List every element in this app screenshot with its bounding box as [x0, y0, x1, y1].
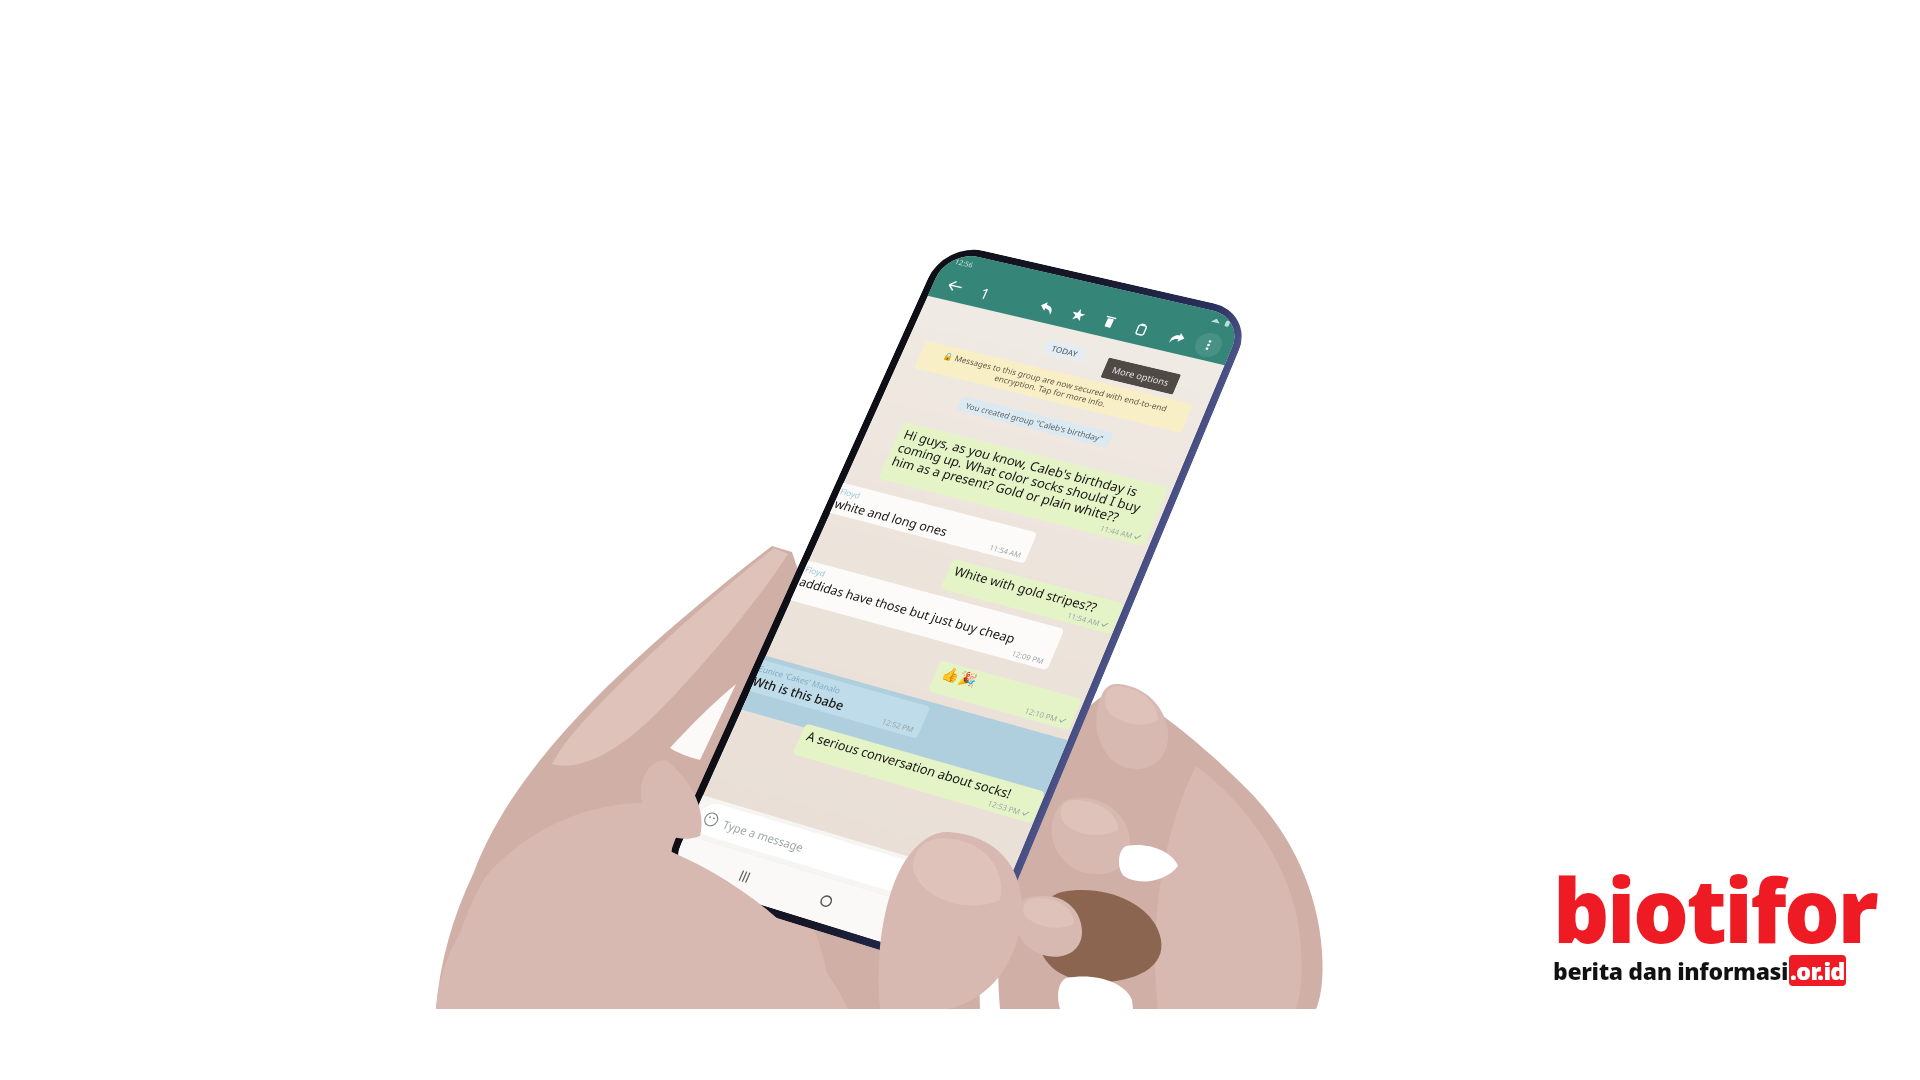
staticText: A serious conversation about socks! [804, 728, 1015, 802]
staticText: Hi guys, as you know, Caleb's birthday i… [889, 426, 1161, 533]
button[interactable]: Recent apps [727, 861, 761, 891]
button[interactable]: Floyd [830, 483, 1038, 564]
button[interactable]: Delete [1093, 309, 1126, 335]
staticText: 1 [977, 283, 994, 304]
staticText: biotifor [1553, 849, 1877, 969]
button[interactable]: Hi guys, as you know, Caleb's birthday i… [878, 422, 1169, 546]
button[interactable]: 🔒 Messages to this group are now secured… [914, 340, 1193, 433]
staticText: Floyd [804, 563, 828, 579]
staticText: addidas have those but just buy cheap [797, 573, 1018, 647]
button[interactable]: More options [1191, 330, 1226, 360]
staticText: 12:10 PM [1023, 705, 1059, 724]
staticText: You created group "Caleb's birthday" [964, 400, 1106, 444]
button[interactable]: White with gold stripes?? [940, 559, 1124, 634]
button[interactable]: 👍🎉 [927, 660, 1082, 730]
staticText: 12:09 PM [1010, 648, 1046, 666]
button[interactable]: Reply [1031, 294, 1062, 321]
staticText: TODAY [1050, 343, 1080, 359]
staticText: 🔒 Messages to this group are now secured… [923, 346, 1184, 427]
button[interactable]: Copy [1125, 316, 1158, 343]
staticText: Eunice 'Cakes' Manalo [758, 663, 843, 696]
button[interactable]: Forward [1161, 324, 1193, 351]
staticText: Type a message [720, 816, 807, 855]
staticText: White with gold stripes?? [952, 563, 1100, 616]
button[interactable]: A serious conversation about socks! [792, 723, 1045, 824]
staticText: 11:44 AM [1099, 523, 1134, 540]
button[interactable]: Floyd [790, 560, 1065, 670]
button[interactable]: Home [809, 886, 843, 917]
staticText: berita dan informasi [1553, 955, 1789, 986]
staticText: 11:54 AM [1066, 610, 1102, 628]
staticText: 12:56 [953, 256, 975, 269]
staticText: More options [1110, 363, 1171, 389]
staticText: .or.id [1790, 955, 1845, 986]
staticText: 11:54 AM [988, 542, 1023, 559]
button[interactable]: Type a message [692, 800, 1001, 921]
staticText: Floyd [839, 485, 863, 501]
staticText: 12:52 PM [880, 716, 916, 734]
button[interactable]: Back [940, 273, 971, 299]
button[interactable]: You created group "Caleb's birthday" [956, 396, 1114, 448]
staticText: Wth is this babe [751, 673, 848, 714]
staticText: 👍🎉 [939, 664, 980, 690]
staticText: 12:53 PM [986, 797, 1023, 817]
button[interactable]: Star [1062, 301, 1094, 328]
button[interactable]: Eunice 'Cakes' Manalo [750, 660, 931, 739]
staticText: white and long ones [832, 495, 950, 540]
